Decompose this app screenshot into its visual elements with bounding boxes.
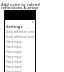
button[interactable]: Voice input [6,44,34,49]
staticText: Add voice to calend [1,2,40,7]
staticText: Voice input [6,40,22,44]
button[interactable]: Voice input [6,54,34,59]
button[interactable]: Voice input [6,69,34,72]
staticText: Voice input [6,55,22,59]
button[interactable]: Voice input [6,64,34,69]
staticText: Voice input [6,60,22,64]
staticText: Voice input [6,65,22,69]
staticText: Daily reflection reminder [6,30,34,34]
staticText: Voice input [6,70,22,72]
staticText: Voice input [6,45,22,49]
staticText: Daily reflection reminder [6,35,34,39]
staticText: Voice input [6,50,22,54]
button[interactable]: Daily reflection reminder [6,34,34,39]
button[interactable]: Voice input [6,39,34,44]
staticText: Settings [6,24,23,29]
staticText: reflections & progr [1,5,39,10]
button[interactable]: Voice input [6,49,34,54]
button[interactable]: Voice input [6,59,34,64]
button[interactable]: Daily reflection reminder [6,29,34,34]
